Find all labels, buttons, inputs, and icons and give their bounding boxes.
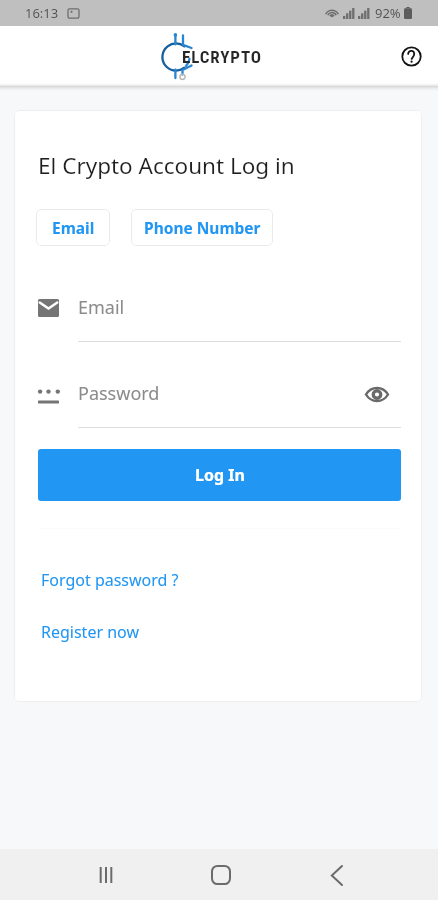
staticText: Email <box>78 295 125 317</box>
button[interactable]: Recent apps <box>82 851 130 899</box>
button[interactable]: Register now <box>41 621 140 643</box>
button[interactable]: Log In <box>38 449 401 501</box>
staticText: Password <box>78 381 160 403</box>
staticText: 92% <box>375 4 401 22</box>
button[interactable]: Email <box>36 209 110 246</box>
staticText: El Crypto Account Log in <box>38 150 295 181</box>
staticText: Log In <box>195 464 245 486</box>
staticText: Email <box>52 217 95 238</box>
staticText: Phone Number <box>144 217 261 238</box>
button[interactable]: Home <box>197 851 245 899</box>
button[interactable]: Help <box>391 36 431 76</box>
staticText: Register now <box>41 621 140 643</box>
staticText: Forgot password ? <box>41 569 179 591</box>
staticText: ELCRYPTO <box>182 47 262 67</box>
button[interactable]: Show password <box>363 383 391 405</box>
staticText: 16:13 <box>25 4 59 22</box>
button[interactable]: Phone Number <box>131 209 273 246</box>
button[interactable]: Forgot password ? <box>41 569 179 591</box>
button[interactable]: Back <box>312 851 360 899</box>
